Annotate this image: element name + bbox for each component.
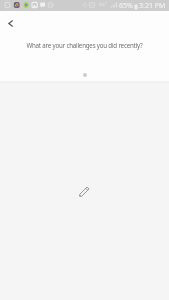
- staticText: 65%: [119, 1, 133, 11]
- button[interactable]: Navigate up: [2, 15, 18, 31]
- staticText: What are your challenges you did recentl…: [26, 41, 143, 49]
- button[interactable]: What are your challenges you did recentl…: [0, 35, 169, 81]
- button[interactable]: Edit answer: [76, 183, 93, 200]
- staticText: 3:21 PM: [139, 1, 166, 11]
